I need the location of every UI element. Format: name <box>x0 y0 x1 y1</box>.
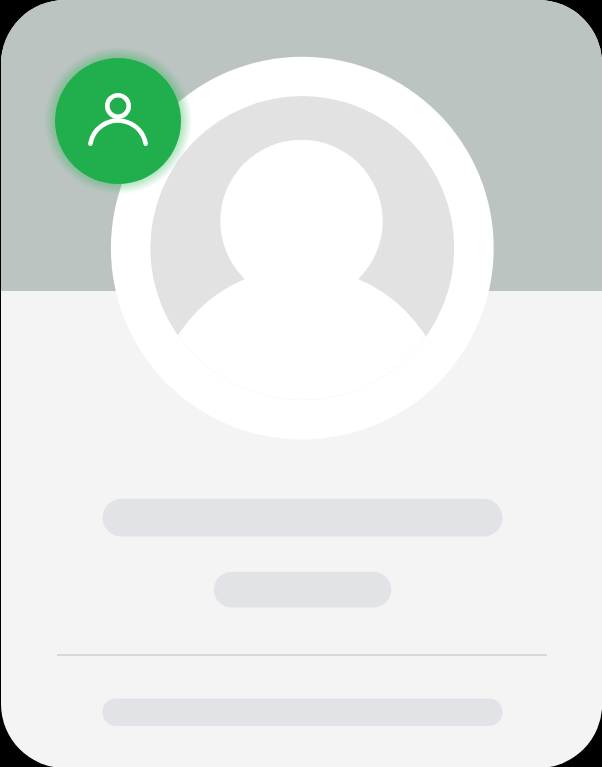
button[interactable]: Profile photo <box>111 57 494 440</box>
button[interactable]: Account <box>55 58 181 184</box>
button[interactable]: Name and subtitle <box>57 482 547 628</box>
button[interactable]: Details <box>57 680 547 746</box>
